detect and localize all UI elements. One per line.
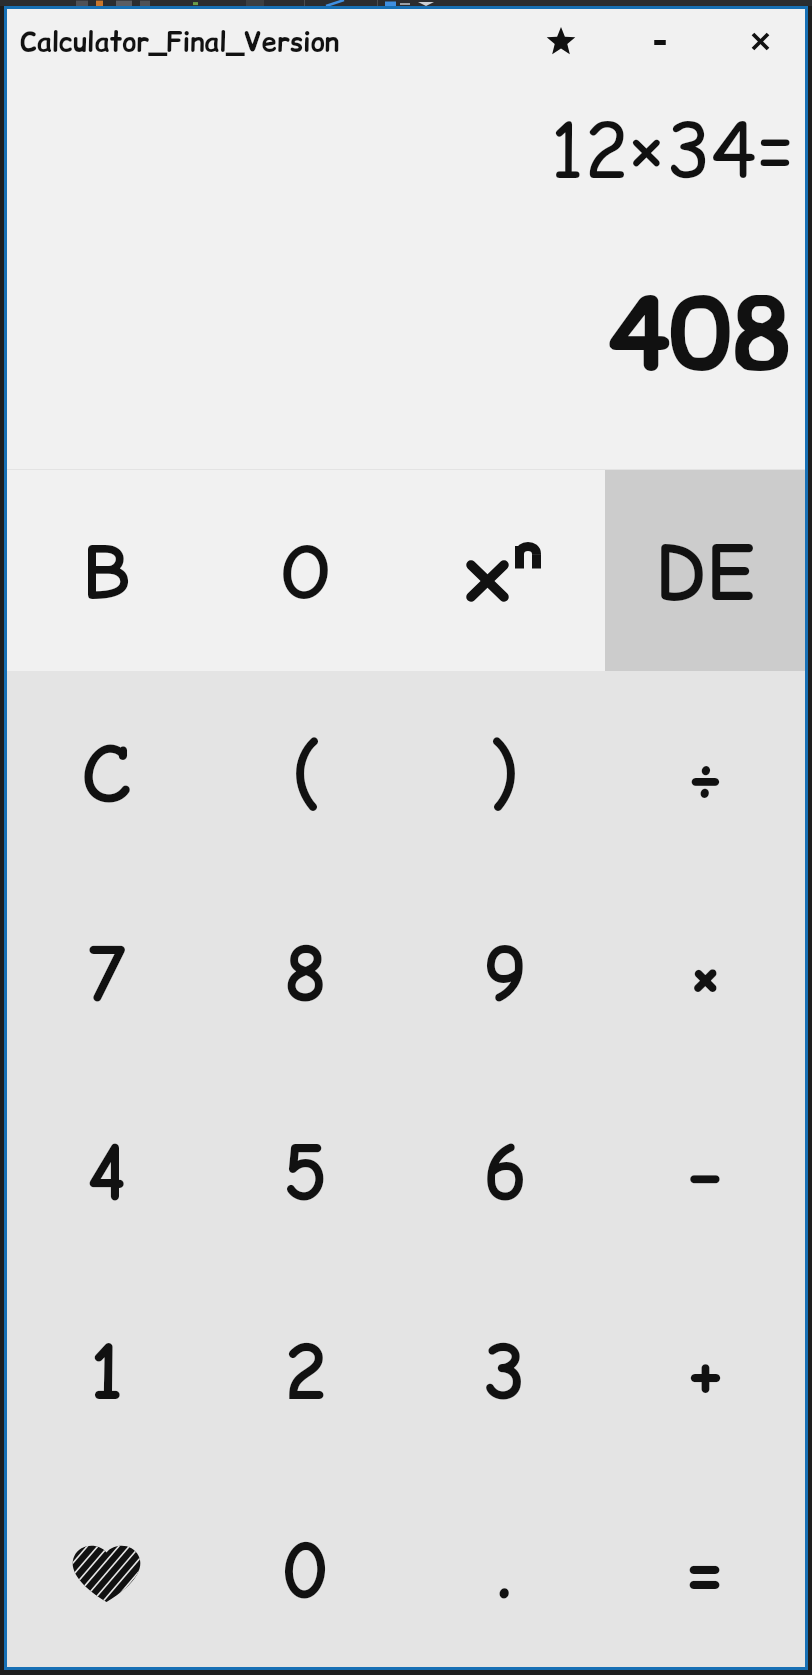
staticText: 4 bbox=[87, 1124, 127, 1221]
button[interactable]: 3 bbox=[405, 1269, 605, 1468]
button[interactable]: = bbox=[605, 1468, 805, 1667]
button[interactable]: Favorites bbox=[7, 1468, 206, 1667]
button[interactable]: DE bbox=[605, 470, 805, 671]
staticText: C bbox=[81, 726, 132, 823]
staticText: 0 bbox=[281, 1522, 330, 1619]
staticText: ÷ bbox=[687, 726, 724, 823]
button[interactable]: − bbox=[605, 1070, 805, 1269]
button[interactable]: ) bbox=[405, 671, 605, 871]
button[interactable]: 2 bbox=[206, 1269, 405, 1468]
button[interactable]: C bbox=[7, 671, 206, 871]
staticText: + bbox=[687, 1323, 724, 1420]
button[interactable]: Minimize bbox=[638, 20, 682, 64]
button[interactable]: B bbox=[7, 470, 206, 671]
button[interactable]: Close bbox=[738, 19, 782, 63]
button[interactable]: . bbox=[405, 1468, 605, 1667]
staticText: × bbox=[689, 925, 722, 1022]
button[interactable]: 8 bbox=[206, 871, 405, 1070]
staticText: 2 bbox=[285, 1323, 327, 1420]
button[interactable]: Favorite bbox=[539, 19, 583, 63]
staticText: 3 bbox=[484, 1323, 526, 1420]
staticText: 7 bbox=[88, 925, 126, 1022]
button[interactable]: 1 bbox=[7, 1269, 206, 1468]
staticText: 9 bbox=[483, 925, 527, 1022]
staticText: ) bbox=[490, 726, 520, 823]
staticText: DE bbox=[655, 526, 755, 620]
staticText: = bbox=[685, 1522, 725, 1619]
button[interactable]: 5 bbox=[206, 1070, 405, 1269]
staticText: 1 bbox=[90, 1323, 124, 1420]
button[interactable]: + bbox=[605, 1269, 805, 1468]
staticText: . bbox=[497, 1522, 513, 1619]
button[interactable]: 0 bbox=[206, 1468, 405, 1667]
button[interactable]: O bbox=[206, 470, 405, 671]
button[interactable] bbox=[405, 470, 605, 671]
staticText: 8 bbox=[284, 925, 328, 1022]
staticText: Calculator_Final_Version bbox=[20, 23, 339, 61]
staticText: 12×34= bbox=[550, 97, 796, 202]
button[interactable]: 4 bbox=[7, 1070, 206, 1269]
button[interactable]: × bbox=[605, 871, 805, 1070]
staticText: 6 bbox=[483, 1124, 527, 1221]
button[interactable]: 9 bbox=[405, 871, 605, 1070]
button[interactable]: 6 bbox=[405, 1070, 605, 1269]
button[interactable]: ( bbox=[206, 671, 405, 871]
button[interactable]: ÷ bbox=[605, 671, 805, 871]
staticText: 5 bbox=[283, 1124, 328, 1221]
staticText: O bbox=[280, 527, 332, 619]
staticText: B bbox=[82, 527, 131, 619]
staticText: − bbox=[686, 1124, 724, 1221]
button[interactable]: 7 bbox=[7, 871, 206, 1070]
staticText: ( bbox=[291, 726, 321, 823]
staticText: 408 bbox=[609, 264, 793, 404]
